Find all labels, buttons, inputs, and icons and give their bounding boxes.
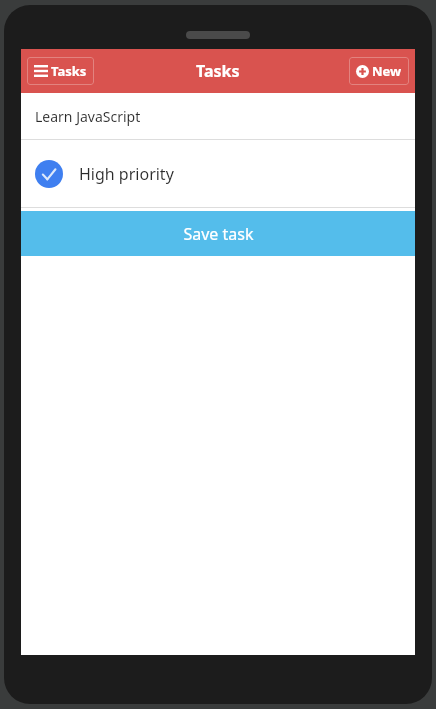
button[interactable]: New [349,57,409,85]
staticText: Learn JavaScript [35,107,141,126]
button[interactable]: High priority checked [21,140,415,207]
staticText: Tasks [196,60,240,82]
staticText: Tasks [51,62,87,80]
other: High priority checked [35,160,63,188]
button[interactable]: Learn JavaScript [21,93,415,139]
button[interactable]: Tasks [27,57,94,85]
button[interactable]: Save task [21,211,415,256]
staticText: New [372,62,402,80]
staticText: Save task [183,223,254,245]
staticText: High priority [79,163,174,185]
